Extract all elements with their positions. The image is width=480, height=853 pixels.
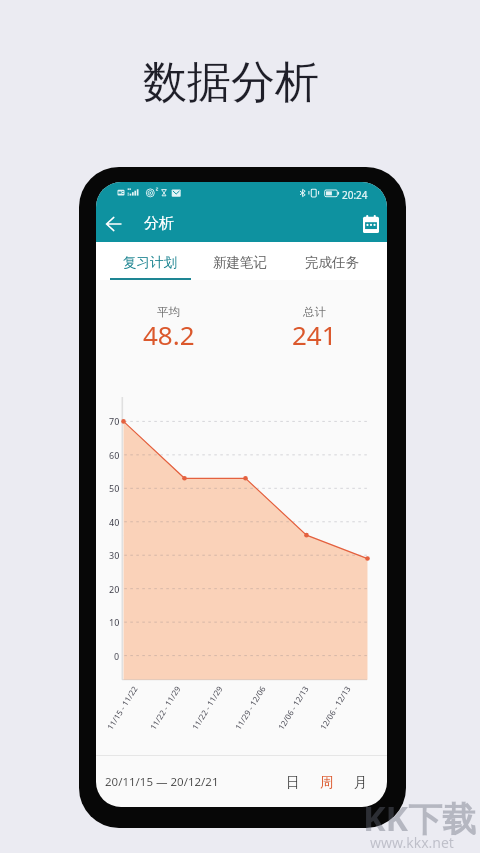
staticText: 完成任务	[305, 254, 359, 271]
staticText: 12/06 - 12/13	[275, 683, 311, 732]
staticText: 周	[320, 774, 334, 791]
staticText: 20:24	[342, 188, 368, 202]
button[interactable]: 月	[351, 772, 371, 792]
staticText: 11/22 - 11/29	[189, 683, 225, 732]
staticText: 平均	[157, 305, 180, 319]
staticText: 分析	[144, 214, 174, 233]
staticText: 48.2	[143, 317, 195, 352]
staticText: 60	[109, 449, 120, 461]
staticText: 日	[286, 774, 300, 791]
button[interactable]: 周	[317, 772, 337, 792]
staticText: 70	[109, 415, 120, 427]
staticText: 数据分析	[143, 55, 319, 110]
button[interactable]: 新建笔记	[196, 242, 284, 280]
staticText: 50	[109, 482, 120, 494]
button[interactable]: Calendar	[356, 209, 386, 239]
staticText: 40	[109, 516, 120, 528]
button[interactable]: 日	[283, 772, 303, 792]
staticText: 复习计划	[123, 254, 177, 271]
staticText: 10	[109, 616, 120, 628]
staticText: 新建笔记	[213, 254, 267, 271]
staticText: 20/11/15 — 20/12/21	[105, 774, 219, 790]
staticText: 30	[109, 549, 120, 561]
staticText: 11/15 - 11/22	[104, 683, 140, 732]
staticText: 241	[292, 317, 337, 352]
staticText: www.kkx.net	[370, 833, 454, 852]
staticText: 0	[114, 650, 120, 662]
staticText: 12/06 - 12/13	[317, 683, 353, 732]
button[interactable]: Back	[96, 207, 130, 241]
staticText: 月	[354, 774, 368, 791]
staticText: 11/29 - 12/06	[232, 683, 268, 732]
button[interactable]: 复习计划	[106, 242, 194, 280]
staticText: 11/22 - 11/29	[147, 683, 183, 732]
staticText: 总计	[303, 305, 326, 319]
button[interactable]: 完成任务	[288, 242, 376, 280]
staticText: 20	[109, 583, 120, 595]
staticText: KK下载	[363, 795, 477, 841]
